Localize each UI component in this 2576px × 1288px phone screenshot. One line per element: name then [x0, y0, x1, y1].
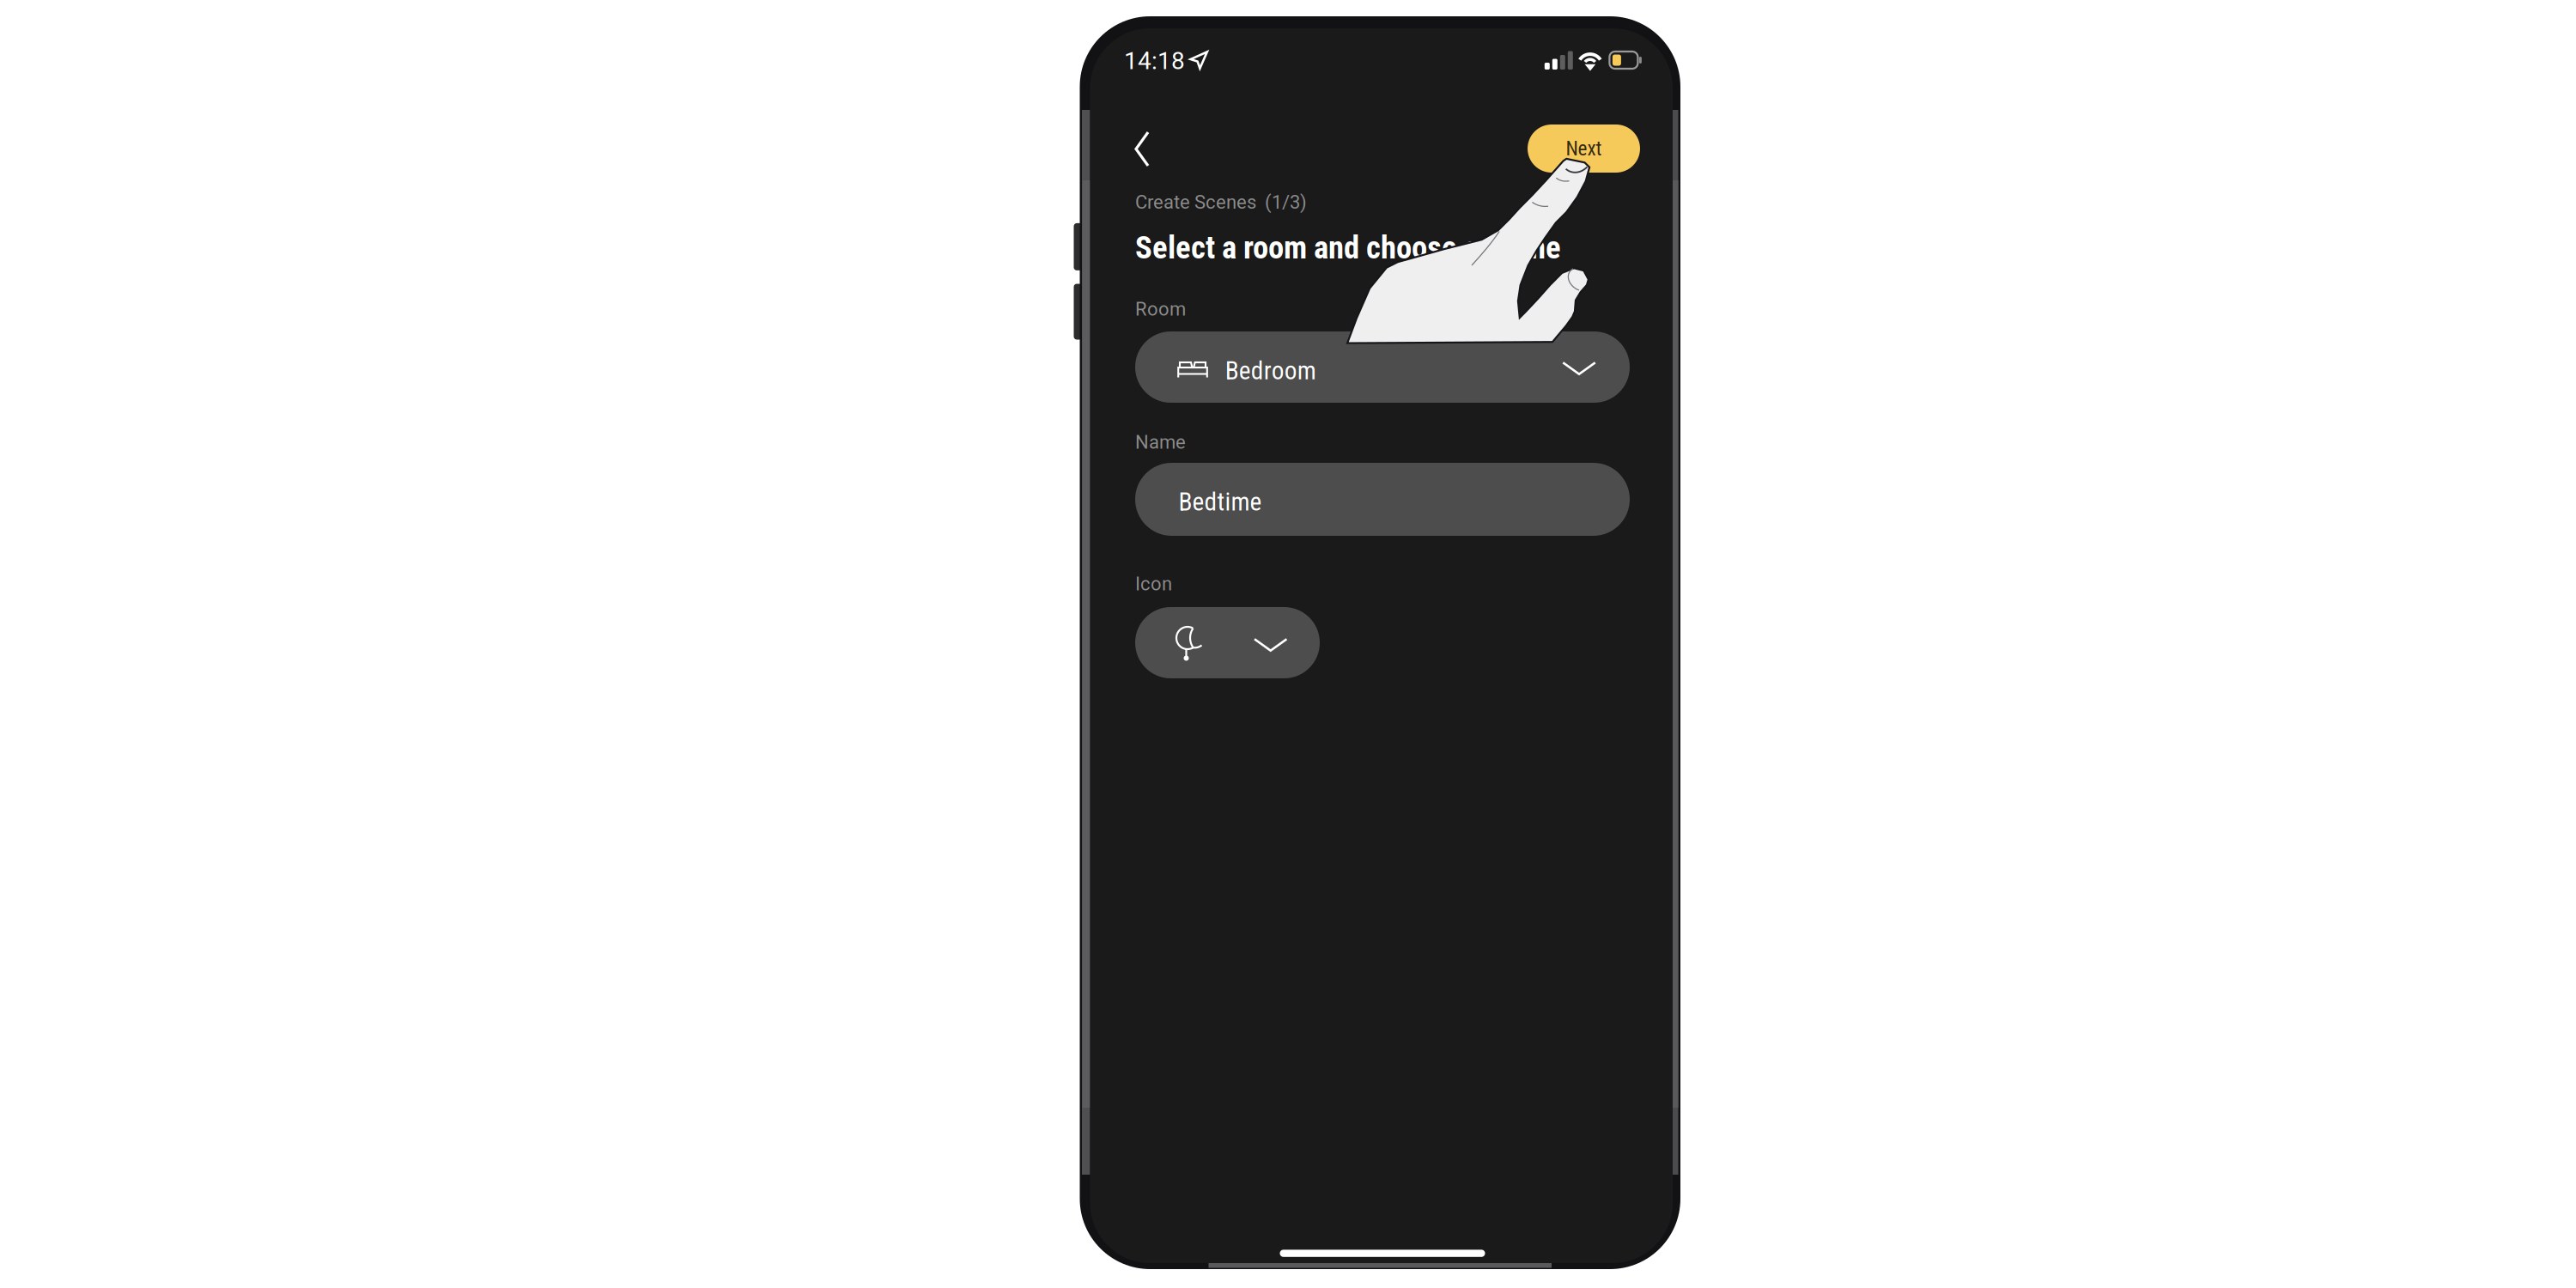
staticText: Select a room and choose a scene: [1135, 229, 1561, 266]
staticText: Room: [1135, 298, 1186, 320]
button[interactable]: Next: [1528, 125, 1640, 173]
staticText: Icon: [1135, 573, 1172, 595]
button[interactable]: Bedroom: [1135, 331, 1630, 403]
staticText: 14:18: [1124, 47, 1185, 75]
staticText: Bedroom: [1225, 356, 1316, 386]
button[interactable]: Back: [1109, 113, 1193, 185]
button[interactable]: Choose icon: [1135, 607, 1320, 678]
button[interactable]: Bedtime: [1135, 463, 1630, 536]
staticText: Name: [1135, 431, 1186, 453]
staticText: Create Scenes (1/3): [1135, 191, 1307, 213]
staticText: Next: [1566, 137, 1602, 160]
staticText: Bedtime: [1178, 487, 1262, 517]
